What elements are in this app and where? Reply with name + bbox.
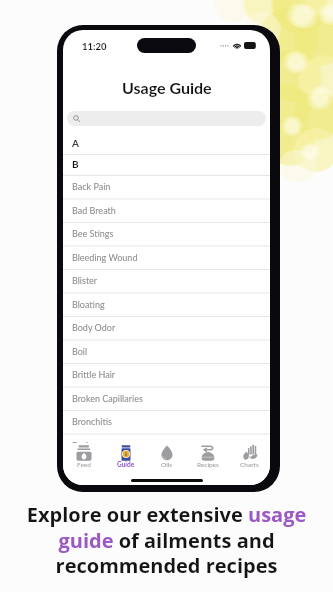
staticText: Charts bbox=[240, 461, 259, 469]
staticText: Bronchitis bbox=[72, 416, 112, 427]
staticText: Blister bbox=[72, 275, 98, 286]
button[interactable]: Bloating bbox=[63, 293, 270, 317]
button[interactable]: Search bbox=[67, 111, 266, 126]
button[interactable]: Burns bbox=[63, 457, 270, 481]
button[interactable]: Bleeding Wound bbox=[63, 246, 270, 270]
button[interactable]: Guide bbox=[105, 443, 146, 475]
button[interactable]: Bee Stings bbox=[63, 222, 270, 246]
staticText: A bbox=[72, 137, 79, 149]
button[interactable]: Back Pain bbox=[63, 175, 270, 199]
button[interactable]: Oils bbox=[146, 443, 187, 475]
staticText: Feed bbox=[77, 461, 91, 469]
staticText: Burns bbox=[72, 463, 95, 474]
staticText: 11:20 bbox=[82, 41, 107, 52]
staticText: Bruises bbox=[72, 440, 101, 451]
staticText: Bee Stings bbox=[72, 228, 114, 239]
staticText: B bbox=[72, 158, 79, 170]
button[interactable]: Bronchitis bbox=[63, 410, 270, 434]
button[interactable]: Charts bbox=[229, 443, 270, 475]
staticText: Brittle Hair bbox=[72, 369, 116, 380]
staticText: Body Odor bbox=[72, 322, 116, 333]
button[interactable]: Broken Capillaries bbox=[63, 387, 270, 411]
button[interactable]: Blister bbox=[63, 269, 270, 293]
staticText: Guide bbox=[117, 461, 135, 469]
staticText: Boil bbox=[72, 346, 88, 357]
button[interactable]: Boil bbox=[63, 340, 270, 364]
staticText: Bleeding Wound bbox=[72, 252, 138, 263]
staticText: Broken Capillaries bbox=[72, 393, 143, 404]
staticText: Bad Breath bbox=[72, 205, 116, 216]
staticText: Oils bbox=[161, 461, 173, 469]
button[interactable]: Bruises bbox=[63, 434, 270, 458]
button[interactable]: Recipes bbox=[187, 443, 228, 475]
staticText: Bloating bbox=[72, 299, 105, 310]
button[interactable]: A bbox=[63, 132, 270, 154]
staticText: Recipes bbox=[197, 461, 219, 469]
button[interactable]: Bad Breath bbox=[63, 199, 270, 223]
staticText: Explore our extensive usage guide of ail… bbox=[6, 501, 327, 579]
staticText: Usage Guide bbox=[122, 78, 212, 97]
button[interactable]: Body Odor bbox=[63, 316, 270, 340]
button[interactable]: B bbox=[63, 153, 270, 175]
staticText: Back Pain bbox=[72, 181, 111, 192]
button[interactable]: Feed bbox=[63, 443, 104, 475]
button[interactable]: Brittle Hair bbox=[63, 363, 270, 387]
